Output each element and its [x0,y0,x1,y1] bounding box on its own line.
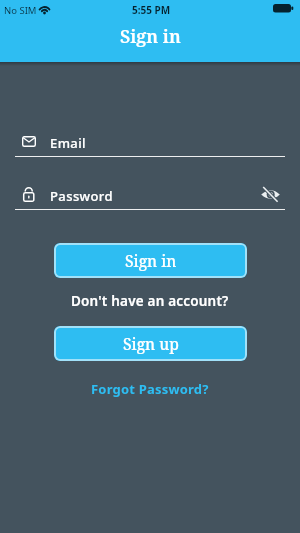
staticText: Sign in [120,24,181,49]
button[interactable]: Sign in [54,243,247,278]
staticText: No SIM [4,4,37,17]
staticText: Password [50,187,113,205]
staticText: Don't have an account? [71,292,229,310]
staticText: 5:55 PM [132,3,171,17]
staticText: Email [50,134,87,152]
staticText: Sign in [125,250,177,271]
staticText: Sign up [123,333,179,354]
button[interactable]: Forgot Password? [91,380,209,398]
button[interactable]: Sign up [54,326,247,361]
